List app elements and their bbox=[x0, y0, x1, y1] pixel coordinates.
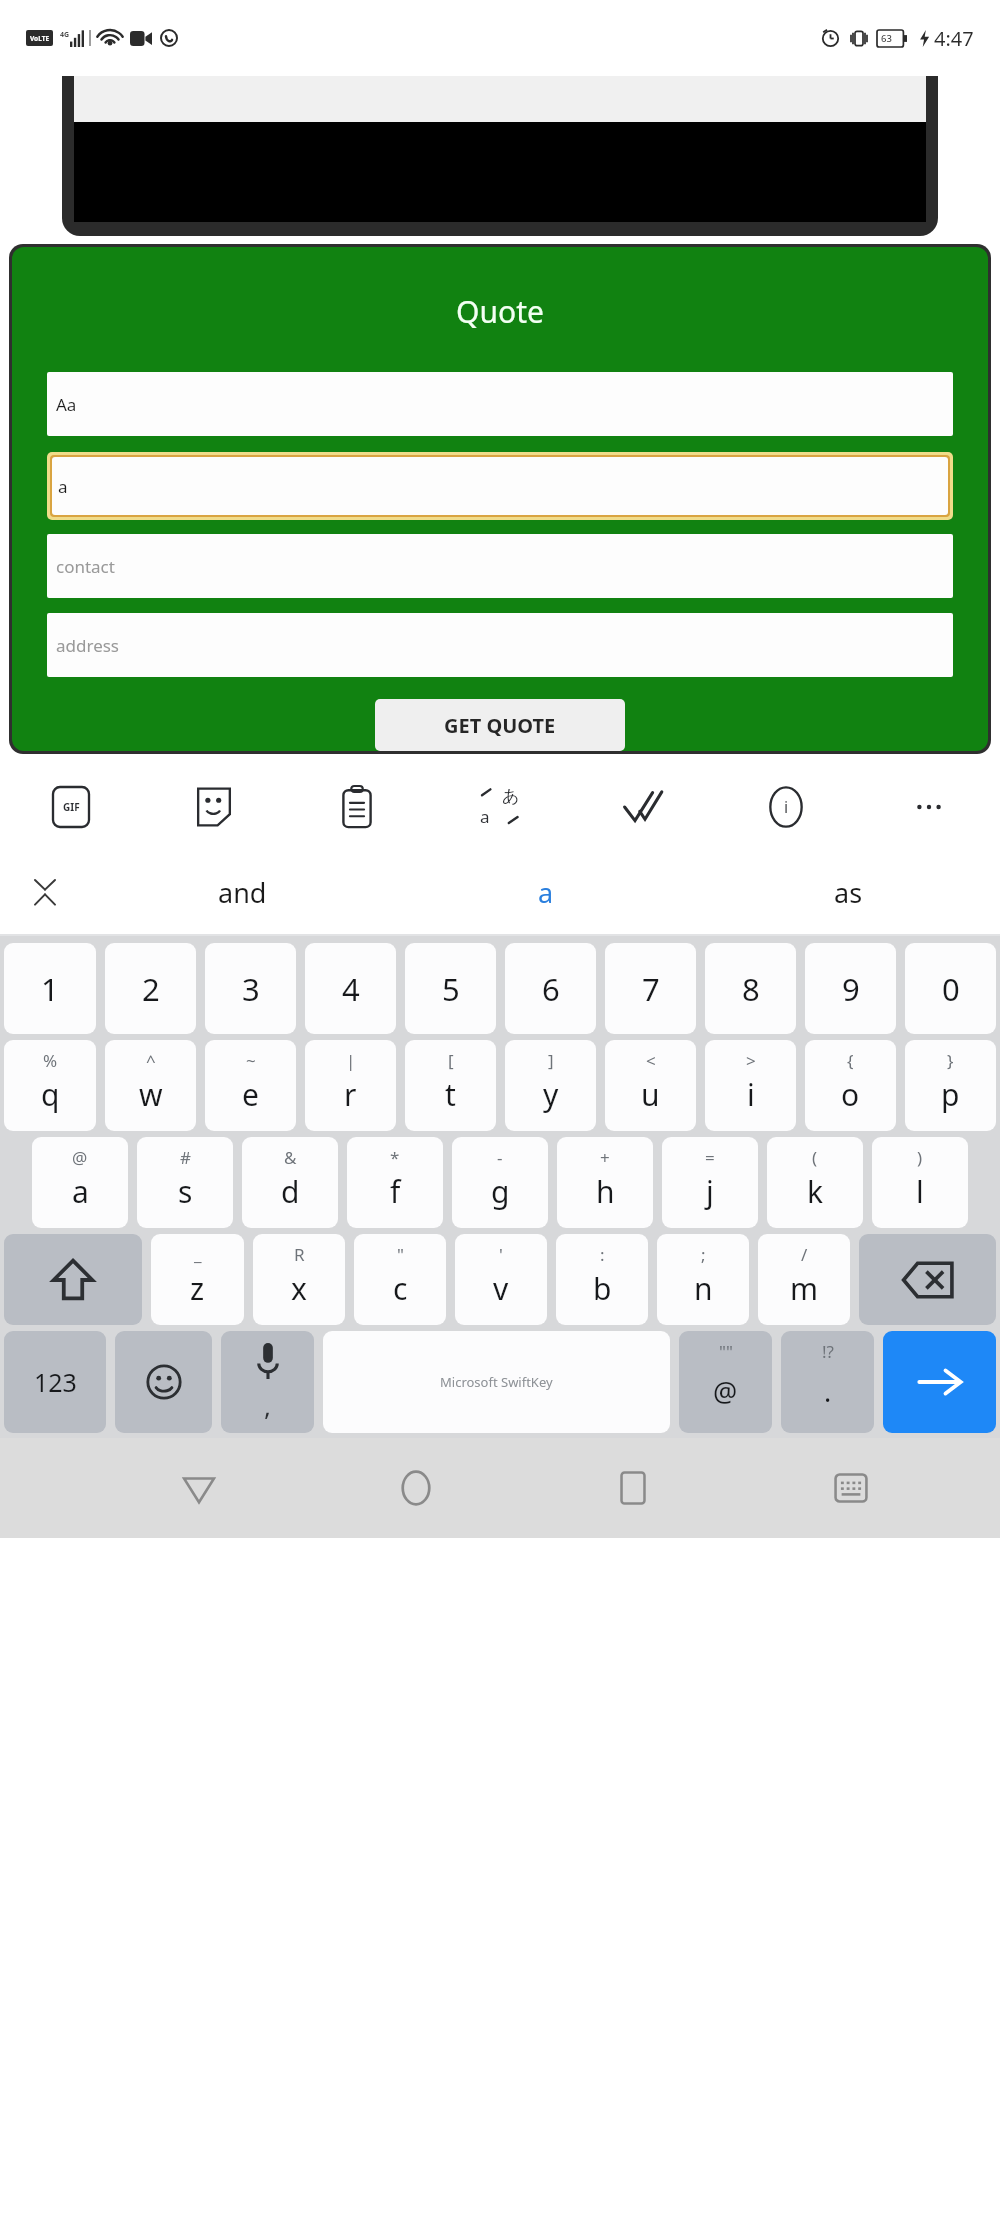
button[interactable]: address bbox=[47, 613, 953, 677]
staticText: " bbox=[397, 1243, 404, 1266]
button[interactable]: Info bbox=[714, 764, 857, 850]
button[interactable]: 5 bbox=[405, 943, 496, 1034]
staticText: : bbox=[600, 1243, 605, 1266]
staticText: l bbox=[916, 1171, 924, 1212]
staticText: as bbox=[834, 874, 863, 911]
button[interactable]: Tasks bbox=[571, 764, 714, 850]
button[interactable]: ^ bbox=[105, 1040, 196, 1131]
button[interactable]: 123 bbox=[4, 1331, 106, 1433]
button[interactable]: < bbox=[605, 1040, 696, 1131]
staticText: Microsoft SwiftKey bbox=[440, 1373, 553, 1391]
staticText: ( bbox=[812, 1146, 818, 1169]
staticText: 63 bbox=[881, 32, 892, 45]
button[interactable]: / bbox=[758, 1234, 850, 1325]
staticText: 4 bbox=[342, 968, 360, 1010]
staticText: 4:47 bbox=[934, 25, 974, 52]
staticText: Quote bbox=[12, 291, 988, 332]
staticText: y bbox=[543, 1074, 559, 1115]
staticText: w bbox=[139, 1074, 163, 1115]
staticText: [ bbox=[448, 1049, 454, 1072]
button[interactable]: 8 bbox=[705, 943, 796, 1034]
button[interactable]: > bbox=[705, 1040, 796, 1131]
button[interactable]: 2 bbox=[105, 943, 196, 1034]
button[interactable]: 7 bbox=[605, 943, 696, 1034]
button[interactable]: 9 bbox=[805, 943, 896, 1034]
button[interactable]: & bbox=[242, 1137, 338, 1228]
staticText: x bbox=[291, 1268, 307, 1309]
button[interactable]: "" bbox=[679, 1331, 772, 1433]
button[interactable]: Aa bbox=[47, 372, 953, 436]
staticText: a bbox=[72, 1171, 89, 1212]
staticText: | bbox=[346, 1049, 356, 1072]
button[interactable]: 0 bbox=[905, 943, 996, 1034]
button[interactable]: + bbox=[557, 1137, 653, 1228]
staticText: q bbox=[41, 1074, 60, 1115]
button[interactable]: ( bbox=[767, 1137, 863, 1228]
staticText: p bbox=[941, 1074, 960, 1115]
button[interactable]: [ bbox=[405, 1040, 496, 1131]
staticText: GIF bbox=[63, 800, 80, 814]
button[interactable]: More bbox=[857, 764, 1000, 850]
button[interactable]: ~ bbox=[205, 1040, 296, 1131]
button[interactable]: 4 bbox=[305, 943, 396, 1034]
staticText: n bbox=[694, 1268, 713, 1309]
button[interactable]: R bbox=[253, 1234, 345, 1325]
button[interactable]: a bbox=[52, 457, 948, 515]
staticText: 123 bbox=[34, 1365, 77, 1399]
button[interactable]: " bbox=[354, 1234, 446, 1325]
button[interactable]: Voice input bbox=[221, 1331, 314, 1433]
button[interactable]: GET QUOTE bbox=[375, 699, 625, 751]
staticText: + bbox=[600, 1146, 610, 1169]
staticText: f bbox=[390, 1171, 401, 1212]
staticText: 5 bbox=[442, 968, 460, 1010]
button[interactable]: : bbox=[556, 1234, 648, 1325]
staticText: z bbox=[190, 1268, 205, 1309]
button[interactable]: and bbox=[90, 850, 394, 934]
button[interactable]: - bbox=[452, 1137, 548, 1228]
button[interactable]: as bbox=[697, 850, 1000, 934]
button[interactable]: Recents bbox=[524, 1438, 742, 1538]
button[interactable]: Space bbox=[323, 1331, 670, 1433]
button[interactable]: Shift bbox=[4, 1234, 142, 1325]
staticText: ] bbox=[548, 1049, 554, 1072]
staticText: t bbox=[445, 1074, 456, 1115]
button[interactable]: Backspace bbox=[859, 1234, 996, 1325]
staticText: @ bbox=[72, 1146, 88, 1169]
staticText: 4G bbox=[60, 30, 70, 40]
button[interactable]: Enter bbox=[883, 1331, 996, 1433]
button[interactable]: GIF bbox=[0, 764, 142, 850]
button[interactable]: Clipboard bbox=[285, 764, 428, 850]
button[interactable]: Home bbox=[307, 1438, 524, 1538]
staticText: GET QUOTE bbox=[444, 712, 556, 739]
button[interactable]: Expand suggestions bbox=[0, 850, 90, 934]
button[interactable]: 3 bbox=[205, 943, 296, 1034]
button[interactable]: } bbox=[905, 1040, 996, 1131]
button[interactable]: Back bbox=[90, 1438, 307, 1538]
button[interactable]: a bbox=[394, 850, 697, 934]
staticText: 8 bbox=[742, 968, 760, 1010]
button[interactable]: % bbox=[4, 1040, 96, 1131]
button[interactable]: Stickers bbox=[142, 764, 285, 850]
button[interactable]: ) bbox=[872, 1137, 968, 1228]
staticText: j bbox=[706, 1171, 714, 1212]
button[interactable]: ] bbox=[505, 1040, 596, 1131]
button[interactable]: * bbox=[347, 1137, 443, 1228]
button[interactable]: Translate bbox=[428, 764, 571, 850]
button[interactable]: { bbox=[805, 1040, 896, 1131]
button[interactable]: 6 bbox=[505, 943, 596, 1034]
button[interactable]: = bbox=[662, 1137, 758, 1228]
button[interactable]: ; bbox=[657, 1234, 749, 1325]
staticText: _ bbox=[194, 1243, 202, 1266]
button[interactable]: Emoji bbox=[115, 1331, 212, 1433]
button[interactable]: contact bbox=[47, 534, 953, 598]
button[interactable]: !? bbox=[781, 1331, 874, 1433]
button[interactable]: @ bbox=[32, 1137, 128, 1228]
button[interactable]: Hide keyboard bbox=[742, 1438, 960, 1538]
button[interactable]: 1 bbox=[4, 943, 96, 1034]
button[interactable]: | bbox=[305, 1040, 396, 1131]
button[interactable]: _ bbox=[151, 1234, 244, 1325]
button[interactable]: # bbox=[137, 1137, 233, 1228]
staticText: c bbox=[393, 1268, 408, 1309]
staticText: R bbox=[294, 1243, 305, 1266]
button[interactable]: ' bbox=[455, 1234, 547, 1325]
